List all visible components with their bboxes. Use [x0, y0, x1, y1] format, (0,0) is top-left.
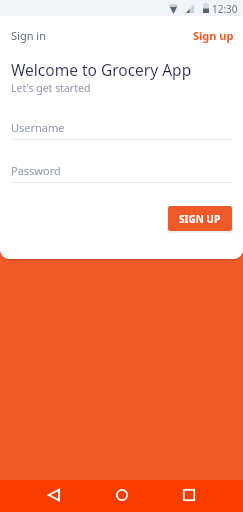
staticText: Username — [11, 120, 65, 135]
button[interactable]: Home — [115, 488, 128, 501]
button[interactable]: Sign up — [193, 28, 234, 43]
staticText: Password — [11, 163, 61, 178]
button[interactable]: Password — [0, 163, 243, 183]
staticText: SIGN UP — [179, 212, 221, 226]
staticText: 12:30 — [212, 2, 238, 16]
staticText: Sign up — [193, 28, 234, 43]
button[interactable]: Sign in — [11, 28, 46, 43]
button[interactable]: SIGN UP — [168, 206, 232, 231]
button[interactable]: Recents — [182, 488, 195, 501]
staticText: Let's get started — [11, 81, 91, 95]
button[interactable]: Back — [47, 488, 60, 501]
button[interactable]: Username — [0, 120, 243, 140]
staticText: Welcome to Grocery App — [11, 59, 192, 80]
staticText: Sign in — [11, 28, 46, 43]
